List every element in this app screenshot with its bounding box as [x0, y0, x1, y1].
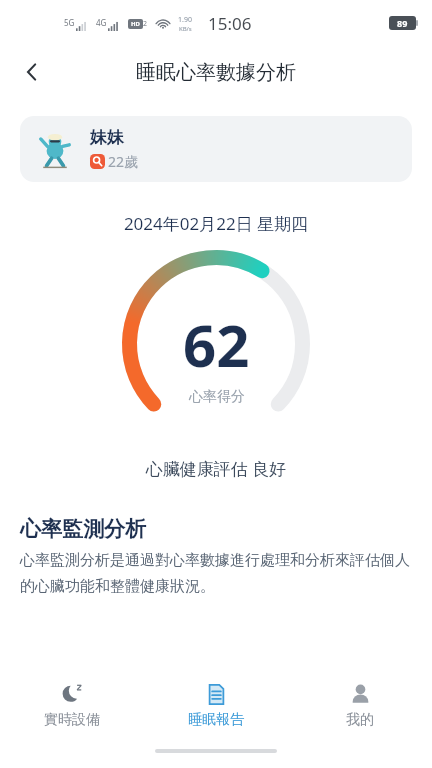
staticText: 實時設備	[44, 711, 100, 729]
staticText: 妹妹	[90, 127, 124, 148]
button[interactable]: 我的	[288, 675, 432, 737]
staticText: 5G	[64, 17, 75, 28]
staticText: 心率監測分析是通過對心率數據進行處理和分析來評估個人的心臟功能和整體健康狀況。	[20, 551, 412, 595]
staticText: 心率監測分析	[20, 516, 146, 542]
staticText: 2	[143, 19, 148, 29]
staticText: 22歲	[108, 152, 139, 171]
staticText: 15:06	[208, 12, 252, 35]
staticText: 89	[397, 17, 408, 29]
staticText: HD	[131, 20, 140, 28]
staticText: 睡眠心率數據分析	[136, 60, 296, 85]
staticText: 心臟健康評估 良好	[0, 457, 432, 480]
staticText: 心率得分	[189, 388, 245, 406]
staticText: 62	[183, 305, 250, 384]
staticText: 1.90	[178, 15, 192, 25]
staticText: 睡眠報告	[188, 711, 244, 729]
staticText: 4G	[96, 17, 107, 28]
staticText: KB/s	[179, 25, 192, 33]
button[interactable]: 妹妹	[20, 116, 412, 182]
button[interactable]: 睡眠報告	[144, 675, 288, 737]
button[interactable]: 實時設備	[0, 675, 144, 737]
staticText: 我的	[346, 711, 374, 729]
button[interactable]: 返回	[10, 50, 54, 94]
staticText: 2024年02月22日 星期四	[0, 212, 432, 235]
